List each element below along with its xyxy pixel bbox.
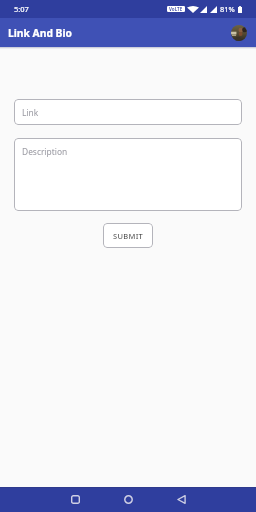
staticText: 81% — [220, 4, 235, 14]
button[interactable]: Home — [113, 487, 143, 512]
button[interactable]: Link — [14, 99, 242, 125]
staticText: Description — [22, 146, 68, 157]
staticText: Link — [22, 107, 39, 118]
button[interactable]: Back — [166, 487, 196, 512]
staticText: SUBMIT — [113, 231, 144, 241]
button[interactable]: Description — [14, 138, 242, 211]
staticText: Link And Bio — [8, 26, 72, 40]
button[interactable]: Recents — [60, 487, 90, 512]
button[interactable]: SUBMIT — [103, 223, 153, 248]
staticText: VoLTE — [169, 6, 183, 12]
staticText: 5:07 — [14, 4, 29, 14]
button[interactable]: Profile — [231, 25, 247, 41]
